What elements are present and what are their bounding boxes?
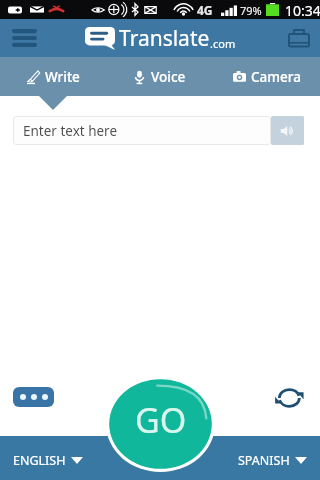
staticText: 10:34: [285, 1, 320, 20]
button[interactable]: More options: [13, 387, 54, 407]
staticText: SPANISH: [238, 452, 290, 469]
button[interactable]: ENGLISH: [13, 452, 83, 469]
staticText: ENGLISH: [13, 452, 66, 469]
staticText: Camera: [251, 68, 301, 86]
button[interactable]: Speak: [271, 116, 304, 145]
staticText: GO: [135, 397, 187, 443]
button[interactable]: Enter text here: [13, 116, 271, 145]
staticText: Write: [45, 68, 80, 86]
button[interactable]: Camera: [213, 57, 320, 96]
button[interactable]: Voice: [106, 57, 213, 96]
button[interactable]: GO: [106, 376, 215, 472]
button[interactable]: Write: [0, 57, 106, 96]
staticText: 79%: [240, 3, 262, 18]
staticText: 4G: [197, 2, 213, 18]
button[interactable]: Menu: [0, 19, 48, 57]
staticText: Voice: [151, 68, 186, 86]
staticText: .com: [210, 36, 236, 51]
button[interactable]: Swap languages: [275, 386, 306, 409]
button[interactable]: SPANISH: [238, 452, 307, 469]
button[interactable]: Tools: [278, 19, 320, 57]
staticText: Enter text here: [23, 122, 118, 140]
staticText: Translate: [119, 24, 210, 53]
